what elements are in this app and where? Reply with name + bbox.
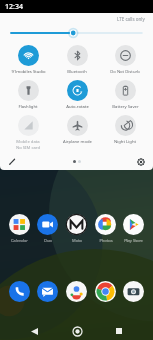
- button[interactable]: Home: [69, 323, 85, 339]
- staticText: 91mobiles Studio: [11, 69, 46, 75]
- staticText: Moto: [72, 238, 82, 243]
- button[interactable]: Messages: [34, 281, 61, 302]
- button[interactable]: Phone: [6, 281, 33, 302]
- button[interactable]: Photos: [92, 214, 119, 243]
- button[interactable]: Contacts: [63, 281, 90, 302]
- button[interactable]: Camera: [120, 281, 147, 302]
- button[interactable]: Airplane mode: [54, 114, 100, 145]
- staticText: Photos: [99, 238, 113, 243]
- staticText: Duo: [44, 238, 52, 243]
- button[interactable]: Edit tiles: [6, 155, 19, 168]
- button[interactable]: Brightness: [0, 25, 153, 41]
- button[interactable]: Mobile data No SIM card: [5, 114, 51, 150]
- staticText: Do Not Disturb: [110, 69, 140, 75]
- button[interactable]: Night Light: [102, 114, 148, 145]
- button[interactable]: Battery Saver: [102, 79, 148, 110]
- button[interactable]: Back: [26, 323, 42, 339]
- staticText: Bluetooth: [67, 69, 87, 75]
- button[interactable]: Do Not Disturb: [102, 44, 148, 75]
- staticText: Auto-rotate: [66, 104, 89, 110]
- staticText: Flashlight: [18, 104, 38, 110]
- staticText: Calendar: [11, 238, 28, 243]
- button[interactable]: 91mobiles Studio: [5, 44, 51, 75]
- staticText: Mobile data No SIM card: [16, 139, 40, 150]
- button[interactable]: Calendar: [6, 214, 33, 243]
- staticText: Play Store: [124, 238, 143, 243]
- staticText: Battery Saver: [112, 104, 139, 110]
- button[interactable]: Recents: [111, 323, 127, 339]
- button[interactable]: Chrome: [92, 281, 119, 302]
- button[interactable]: Duo: [34, 214, 61, 243]
- button[interactable]: Auto-rotate: [54, 79, 100, 110]
- staticText: 12:34: [5, 2, 23, 12]
- staticText: LTE calls only: [117, 16, 145, 22]
- button[interactable]: Moto: [63, 214, 90, 243]
- button[interactable]: Play Store: [120, 214, 147, 243]
- staticText: Night Light: [114, 139, 136, 145]
- button[interactable]: Flashlight: [5, 79, 51, 110]
- button[interactable]: Settings: [134, 155, 147, 168]
- button[interactable]: Bluetooth: [54, 44, 100, 75]
- staticText: Airplane mode: [63, 139, 92, 145]
